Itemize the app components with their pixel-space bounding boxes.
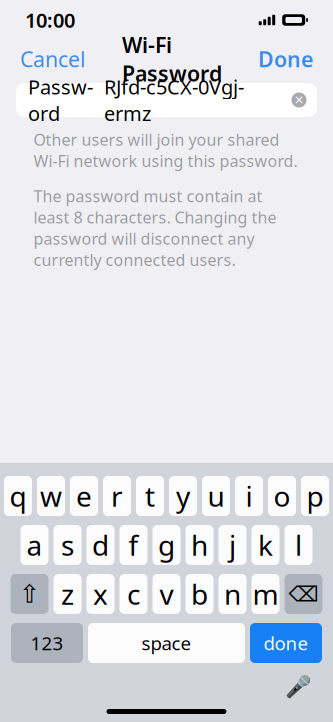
button[interactable]: g [152, 525, 180, 565]
staticText: ✕ [294, 93, 304, 107]
staticText: u [207, 477, 224, 515]
staticText: Password [28, 73, 93, 126]
staticText: f [128, 526, 138, 564]
staticText: p [306, 477, 323, 515]
button[interactable]: j [218, 525, 246, 565]
staticText: c [127, 575, 140, 613]
button[interactable]: Dictate [281, 671, 315, 703]
staticText: m [252, 575, 278, 613]
button[interactable]: p [301, 476, 329, 516]
staticText: Done [258, 45, 313, 73]
button[interactable]: i [235, 476, 263, 516]
button[interactable]: x [86, 574, 114, 614]
button[interactable]: Shift [10, 574, 48, 614]
button[interactable]: n [218, 574, 246, 614]
staticText: a [26, 526, 42, 564]
staticText: q [9, 477, 26, 515]
staticText: t [145, 477, 155, 515]
staticText: i [245, 477, 252, 515]
button[interactable]: r [103, 476, 131, 516]
button[interactable]: a [20, 525, 48, 565]
staticText: x [93, 575, 108, 613]
staticText: z [61, 575, 74, 613]
staticText: ⇧ [19, 580, 40, 608]
staticText: e [76, 477, 92, 515]
button[interactable]: b [185, 574, 213, 614]
staticText: b [191, 575, 208, 613]
staticText: Wi-Fi Password [122, 31, 222, 87]
button[interactable]: v [152, 574, 180, 614]
staticText: k [258, 526, 273, 564]
staticText: done [263, 631, 308, 655]
button[interactable]: s [53, 525, 81, 565]
button[interactable]: c [119, 574, 147, 614]
button[interactable]: h [185, 525, 213, 565]
button[interactable]: u [202, 476, 230, 516]
button[interactable]: f [119, 525, 147, 565]
button[interactable]: e [70, 476, 98, 516]
staticText: j [229, 526, 236, 564]
button[interactable]: z [53, 574, 81, 614]
button[interactable]: 123 [11, 623, 83, 663]
staticText: h [191, 526, 208, 564]
staticText: Other users will join your shared Wi-Fi … [33, 129, 297, 171]
staticText: 🎤 [284, 675, 311, 699]
button[interactable]: k [251, 525, 279, 565]
staticText: g [158, 526, 175, 564]
button[interactable]: Done [254, 38, 317, 80]
button[interactable]: Delete [284, 574, 322, 614]
staticText: 10:00 [25, 7, 75, 33]
staticText: space [141, 631, 191, 655]
button[interactable]: Clear password [285, 85, 313, 115]
staticText: r [111, 477, 123, 515]
button[interactable]: t [136, 476, 164, 516]
button[interactable]: q [4, 476, 32, 516]
staticText: Cancel [20, 45, 86, 73]
staticText: v [159, 575, 173, 613]
staticText: 123 [30, 631, 63, 655]
button[interactable]: d [86, 525, 114, 565]
staticText: s [61, 526, 74, 564]
button[interactable]: space [88, 623, 245, 663]
button[interactable]: w [37, 476, 65, 516]
staticText: y [176, 477, 190, 515]
staticText: The password must contain at least 8 cha… [33, 185, 276, 270]
staticText: o [273, 477, 290, 515]
staticText: n [224, 575, 241, 613]
button[interactable]: o [268, 476, 296, 516]
staticText: l [295, 526, 302, 564]
staticText: ⌫ [288, 582, 318, 606]
button[interactable]: Cancel [16, 38, 90, 80]
button[interactable]: done [250, 623, 322, 663]
button[interactable]: m [251, 574, 279, 614]
button[interactable]: l [284, 525, 312, 565]
staticText: w [40, 477, 62, 515]
staticText: RJfd-c5CX-0Vgj-ermz [104, 73, 244, 126]
staticText: d [92, 526, 109, 564]
button[interactable]: y [169, 476, 197, 516]
